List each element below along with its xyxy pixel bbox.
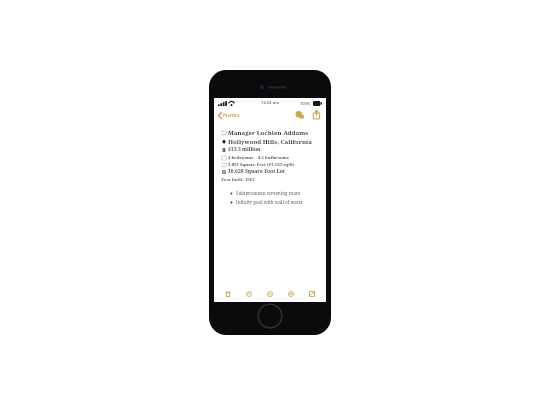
staticText: 4 bedrooms 4.5 bathrooms bbox=[228, 154, 289, 160]
staticText: Year built: 1962 bbox=[221, 176, 255, 182]
staticText: Manager Lochlen Addams bbox=[228, 128, 309, 136]
staticText: 12:02 am bbox=[261, 100, 280, 106]
staticText: 100% bbox=[300, 101, 311, 106]
button[interactable]: Checklist bbox=[242, 287, 256, 301]
staticText: 10,628 Square Foot Lot bbox=[228, 168, 285, 175]
staticText: Infinity pool with wall of water bbox=[236, 199, 303, 205]
button[interactable]: Markup bbox=[284, 287, 298, 301]
button[interactable]: Notes bbox=[214, 109, 244, 121]
staticText: $13.5 million bbox=[228, 146, 261, 153]
staticText: Subterranean screening room bbox=[236, 190, 301, 196]
staticText: Notes bbox=[223, 111, 240, 119]
button[interactable]: Camera bbox=[263, 287, 277, 301]
button[interactable]: Delete bbox=[221, 287, 235, 301]
staticText: 3,821 Square Feet ($3,533 sq/ft) bbox=[228, 161, 295, 167]
button[interactable]: Share bbox=[311, 108, 322, 121]
button[interactable]: Lock note bbox=[293, 108, 306, 121]
button[interactable]: Compose bbox=[305, 287, 319, 301]
staticText: Hollywood Hills, California bbox=[228, 137, 312, 145]
